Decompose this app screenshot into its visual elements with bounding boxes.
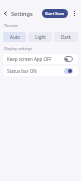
- button[interactable]: Start Scan: [42, 9, 68, 18]
- button[interactable]: Light: [28, 32, 52, 42]
- button[interactable]: Dark: [54, 32, 78, 42]
- button[interactable]: Status bar ON: [3, 66, 78, 76]
- staticText: Start Scan: [45, 11, 65, 16]
- staticText: Status bar ON: [7, 68, 37, 74]
- button[interactable]: Back: [0, 6, 11, 21]
- staticText: Themes: [4, 23, 19, 28]
- staticText: Auto: [10, 34, 20, 40]
- staticText: Keep screen App OFF: [7, 56, 52, 62]
- staticText: Display settings: [4, 46, 33, 51]
- staticText: Settings: [11, 10, 33, 18]
- staticText: Dark: [61, 34, 71, 40]
- button[interactable]: Keep screen App OFF: [3, 54, 78, 64]
- staticText: Light: [35, 34, 46, 40]
- button[interactable]: More options: [68, 6, 81, 21]
- button[interactable]: Auto: [3, 32, 26, 42]
